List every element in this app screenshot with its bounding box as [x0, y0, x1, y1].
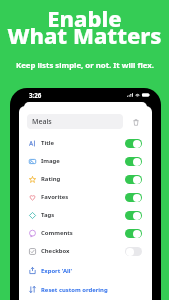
button[interactable]: Favorites [19, 188, 152, 206]
button[interactable]: Comments [19, 224, 152, 242]
button[interactable]: Title [19, 134, 152, 152]
staticText: Export 'All' [41, 267, 73, 275]
staticText: Reset custom ordering [41, 286, 108, 294]
staticText: Comments [41, 229, 73, 237]
button[interactable]: On [125, 229, 142, 238]
button[interactable]: Tags [19, 206, 152, 224]
button[interactable]: On [125, 139, 142, 148]
staticText: Meals [32, 117, 52, 127]
staticText: Favorites [41, 193, 69, 201]
staticText: Image [41, 157, 60, 165]
button[interactable]: On [125, 157, 142, 166]
button[interactable]: On [125, 193, 142, 202]
button[interactable]: On [125, 175, 142, 184]
staticText: Title [41, 139, 54, 147]
staticText: Rating [41, 175, 61, 183]
button[interactable]: On [125, 211, 142, 220]
staticText: Enable What Matters [7, 3, 162, 51]
staticText: Tags [41, 211, 55, 219]
button[interactable]: Export 'All' [19, 261, 152, 280]
button[interactable]: Delete list [130, 115, 142, 129]
button[interactable]: Rating [19, 170, 152, 188]
button[interactable]: Meals [27, 114, 123, 129]
button[interactable]: Off [125, 247, 142, 256]
staticText: Keep lists simple, or not. It will flex. [16, 60, 154, 71]
staticText: Checkbox [41, 247, 70, 255]
button[interactable]: Checkbox [19, 242, 152, 260]
staticText: 3:26 [29, 91, 42, 99]
button[interactable]: Reset custom ordering [19, 280, 152, 299]
button[interactable]: Image [19, 152, 152, 170]
